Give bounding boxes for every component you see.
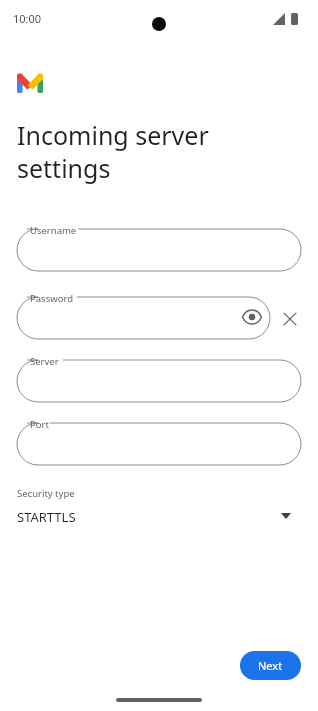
staticText: Server bbox=[30, 355, 59, 368]
button[interactable]: Server bbox=[17, 353, 301, 402]
button[interactable]: Show password bbox=[240, 305, 264, 329]
button[interactable]: Clear password bbox=[279, 308, 301, 330]
staticText: 10:00 bbox=[13, 11, 42, 26]
staticText: Username bbox=[30, 224, 77, 237]
button[interactable]: Password bbox=[17, 290, 270, 339]
button[interactable]: Next bbox=[240, 651, 301, 680]
button[interactable]: Username bbox=[17, 222, 301, 271]
staticText: Next bbox=[258, 658, 283, 673]
staticText: STARTTLS bbox=[17, 508, 76, 526]
staticText: Password bbox=[30, 292, 73, 305]
staticText: Incoming server settings bbox=[17, 118, 209, 185]
staticText: Port bbox=[30, 418, 49, 431]
button[interactable]: Port bbox=[17, 416, 301, 465]
staticText: Security type bbox=[17, 487, 75, 500]
button[interactable]: Security type bbox=[0, 483, 318, 533]
